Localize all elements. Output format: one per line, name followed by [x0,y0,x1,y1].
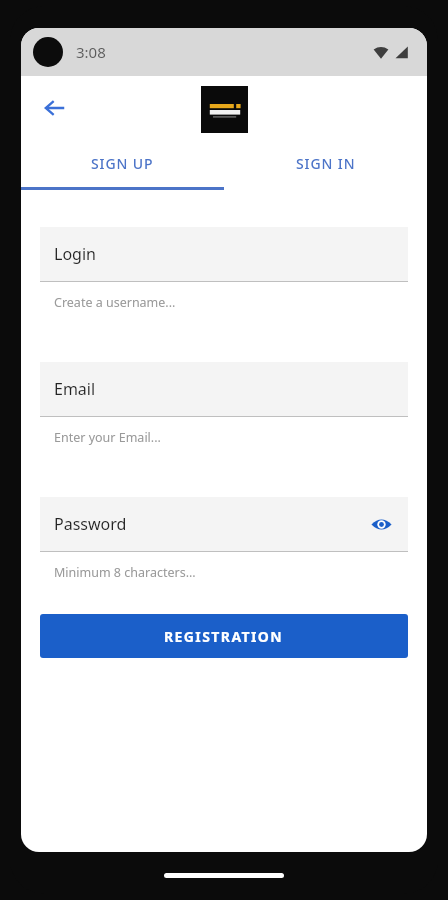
button[interactable]: REGISTRATION [40,614,408,658]
button[interactable]: Login [40,227,408,281]
staticText: Enter your Email... [54,429,161,446]
staticText: REGISTRATION [164,627,284,646]
button[interactable]: Show password [364,507,398,541]
staticText: SIGN UP [91,154,154,173]
staticText: SIGN IN [296,154,356,173]
button[interactable]: Academy logo [201,86,248,133]
button[interactable]: SIGN IN [224,139,427,187]
staticText: Create a username... [54,294,176,311]
staticText: Password [54,513,127,535]
button[interactable]: Back [33,86,77,130]
staticText: Email [54,378,96,400]
button[interactable]: Password [40,497,408,551]
staticText: Login [54,243,96,265]
staticText: Minimum 8 characters... [54,564,196,581]
button[interactable]: SIGN UP [21,139,224,187]
staticText: 3:08 [76,42,106,62]
button[interactable]: Email [40,362,408,416]
